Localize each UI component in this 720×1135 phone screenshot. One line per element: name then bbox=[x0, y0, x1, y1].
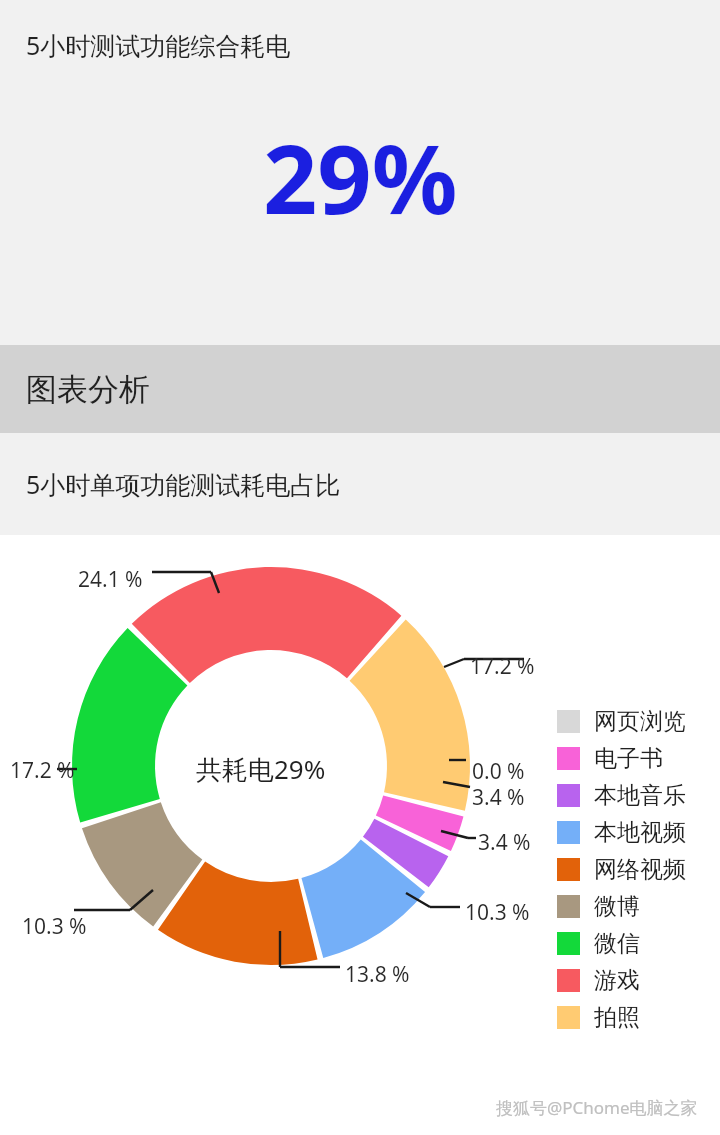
button[interactable]: 本地音乐 bbox=[557, 781, 686, 810]
staticText: 13.8 % bbox=[345, 960, 410, 989]
staticText: 29% bbox=[263, 112, 458, 241]
staticText: 10.3 % bbox=[465, 898, 530, 927]
staticText: 网页浏览 bbox=[594, 707, 686, 736]
staticText: 24.1 % bbox=[78, 565, 143, 594]
button[interactable]: 网络视频 bbox=[557, 855, 686, 884]
staticText: 本地视频 bbox=[594, 818, 686, 847]
staticText: 共耗电29% bbox=[196, 751, 326, 787]
staticText: 搜狐号@PChome电脑之家 bbox=[496, 1096, 698, 1119]
button[interactable]: 网页浏览 bbox=[557, 707, 686, 736]
staticText: 微信 bbox=[594, 929, 640, 958]
staticText: 17.2 % bbox=[470, 652, 535, 681]
staticText: 3.4 % bbox=[472, 783, 525, 812]
staticText: 3.4 % bbox=[478, 828, 531, 857]
staticText: 电子书 bbox=[594, 744, 663, 773]
staticText: 5小时测试功能综合耗电 bbox=[26, 28, 291, 62]
button[interactable]: 微信 bbox=[557, 929, 640, 958]
staticText: 5小时单项功能测试耗电占比 bbox=[26, 467, 341, 501]
button[interactable]: 图表分析 bbox=[0, 345, 720, 433]
button[interactable]: 本地视频 bbox=[557, 818, 686, 847]
staticText: 17.2 % bbox=[10, 756, 75, 785]
staticText: 微博 bbox=[594, 892, 640, 921]
button[interactable]: 微博 bbox=[557, 892, 640, 921]
staticText: 0.0 % bbox=[472, 757, 525, 786]
staticText: 游戏 bbox=[594, 966, 640, 995]
button[interactable]: 游戏 bbox=[557, 966, 640, 995]
staticText: 拍照 bbox=[594, 1003, 640, 1032]
button[interactable]: 拍照 bbox=[557, 1003, 640, 1032]
staticText: 本地音乐 bbox=[594, 781, 686, 810]
staticText: 图表分析 bbox=[26, 370, 150, 409]
staticText: 网络视频 bbox=[594, 855, 686, 884]
button[interactable]: 电子书 bbox=[557, 744, 663, 773]
staticText: 10.3 % bbox=[22, 912, 87, 941]
